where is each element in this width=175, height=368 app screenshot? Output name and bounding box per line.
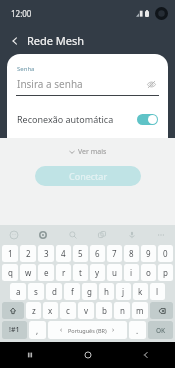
staticText: 4 <box>61 248 66 259</box>
button[interactable]: t <box>73 264 88 281</box>
button[interactable]: c <box>60 302 76 319</box>
staticText: n <box>120 305 125 316</box>
staticText: m <box>136 305 144 316</box>
button[interactable]: h <box>99 283 114 300</box>
staticText: Ver mais <box>78 147 107 157</box>
staticText: ‹ <box>60 325 63 335</box>
staticText: k <box>138 286 143 297</box>
button[interactable]: , <box>29 321 46 339</box>
button[interactable]: 9 <box>141 245 156 262</box>
button[interactable]: 7 <box>107 245 122 262</box>
staticText: 9 <box>146 248 151 259</box>
button[interactable]: y <box>90 264 105 281</box>
button[interactable]: Shift <box>2 302 24 319</box>
staticText: 12:00 <box>11 8 32 19</box>
button[interactable]: 5 <box>73 245 88 262</box>
staticText: b <box>102 305 107 316</box>
button[interactable]: Search <box>65 227 81 243</box>
button[interactable]: n <box>114 302 130 319</box>
button[interactable]: s <box>28 283 44 300</box>
button[interactable]: Settings <box>35 227 51 243</box>
button[interactable]: Show password <box>144 77 158 91</box>
button[interactable]: g <box>82 283 97 300</box>
staticText: Insira a senha <box>17 77 144 91</box>
staticText: 1 <box>8 248 13 259</box>
button[interactable]: b <box>96 302 112 319</box>
button[interactable]: e <box>38 264 54 281</box>
other: Back <box>9 35 21 47</box>
staticText: Conectar <box>69 170 108 182</box>
staticText: v <box>84 305 89 316</box>
button[interactable]: Conectar <box>35 166 141 186</box>
button[interactable]: 1 <box>2 245 18 262</box>
button[interactable]: u <box>107 264 122 281</box>
button[interactable]: 0 <box>158 245 173 262</box>
staticText: . <box>136 325 139 336</box>
button[interactable]: f <box>64 283 80 300</box>
button[interactable]: r <box>56 264 71 281</box>
button[interactable]: l <box>150 283 165 300</box>
staticText: !#1 <box>9 325 20 335</box>
button[interactable]: 2 <box>20 245 36 262</box>
button[interactable]: Back <box>117 342 175 368</box>
staticText: Senha <box>17 65 35 73</box>
staticText: y <box>95 267 100 278</box>
button[interactable]: Recent apps <box>0 342 59 368</box>
staticText: 6 <box>95 248 100 259</box>
button[interactable]: a <box>10 283 26 300</box>
button[interactable]: ‹ <box>48 321 127 339</box>
staticText: o <box>146 267 151 278</box>
staticText: 7 <box>112 248 117 259</box>
button[interactable]: OK <box>148 321 173 339</box>
button[interactable]: Emoji <box>6 227 22 243</box>
button[interactable]: x <box>43 302 58 319</box>
staticText: s <box>34 286 38 297</box>
button[interactable]: Stickers <box>94 227 110 243</box>
button[interactable]: p <box>158 264 173 281</box>
staticText: c <box>66 305 70 316</box>
button[interactable]: o <box>141 264 156 281</box>
button[interactable]: i <box>124 264 139 281</box>
button[interactable]: q <box>2 264 18 281</box>
staticText: q <box>8 267 13 278</box>
button[interactable]: 3 <box>38 245 54 262</box>
button[interactable]: m <box>132 302 148 319</box>
staticText: 5 <box>78 248 83 259</box>
button[interactable]: !#1 <box>2 321 27 339</box>
staticText: w <box>25 267 32 278</box>
button[interactable]: v <box>78 302 94 319</box>
button[interactable]: j <box>116 283 131 300</box>
button[interactable]: 4 <box>56 245 71 262</box>
button[interactable]: Voice input <box>124 227 140 243</box>
button[interactable]: d <box>46 283 62 300</box>
staticText: g <box>87 286 92 297</box>
button[interactable]: w <box>20 264 36 281</box>
staticText: a <box>16 286 21 297</box>
staticText: u <box>112 267 117 278</box>
staticText: d <box>52 286 57 297</box>
staticText: z <box>32 305 36 316</box>
staticText: Rede Mesh <box>27 33 85 48</box>
button[interactable]: Home <box>59 342 117 368</box>
button[interactable]: Backspace <box>150 302 173 319</box>
button[interactable]: k <box>133 283 148 300</box>
staticText: Português (BR) <box>68 327 107 334</box>
button[interactable]: 6 <box>90 245 105 262</box>
staticText: › <box>112 325 115 335</box>
button[interactable]: z <box>26 302 41 319</box>
staticText: j <box>122 286 125 297</box>
staticText: 2 <box>26 248 31 259</box>
button[interactable]: Ver mais <box>63 145 113 159</box>
staticText: l <box>156 286 159 297</box>
button[interactable]: . <box>129 321 146 339</box>
staticText: t <box>79 267 82 278</box>
staticText: i <box>130 267 133 278</box>
button[interactable]: Reconexão automática <box>7 109 168 129</box>
staticText: h <box>104 286 109 297</box>
button[interactable]: Back <box>5 30 89 51</box>
staticText: 3 <box>44 248 49 259</box>
staticText: Reconexão automática <box>17 113 137 125</box>
button[interactable]: 8 <box>124 245 139 262</box>
staticText: r <box>62 267 66 278</box>
